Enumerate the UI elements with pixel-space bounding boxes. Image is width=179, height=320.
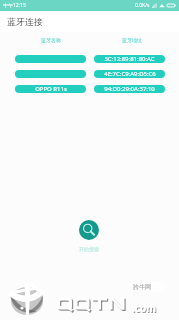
staticText: 跨牛网 bbox=[133, 283, 151, 291]
staticText: 开始搜索 bbox=[79, 246, 99, 252]
staticText: 蓝牙地址 bbox=[122, 37, 142, 43]
button[interactable]: 4E:7C:C9:A9:D5:C6 bbox=[0, 70, 179, 78]
button[interactable]: 开始搜索 bbox=[79, 220, 99, 240]
staticText: .com bbox=[132, 301, 156, 315]
staticText: 中午12:15 bbox=[3, 2, 26, 9]
staticText: 5C:12:89:81:80:AC bbox=[104, 55, 155, 63]
staticText: 蓝牙名称 bbox=[41, 37, 61, 43]
staticText: OPPO R11s bbox=[35, 85, 67, 93]
button[interactable]: 5C:12:89:81:80:AC bbox=[0, 55, 179, 63]
staticText: .com bbox=[133, 302, 157, 316]
staticText: 0.0K/s bbox=[135, 2, 150, 9]
staticText: 94:D0:29:0A:37:10 bbox=[104, 85, 155, 93]
staticText: 4E:7C:C9:A9:D5:C6 bbox=[104, 70, 156, 78]
button[interactable]: OPPO R11s bbox=[0, 85, 179, 93]
staticText: 蓝牙连接 bbox=[7, 16, 43, 27]
